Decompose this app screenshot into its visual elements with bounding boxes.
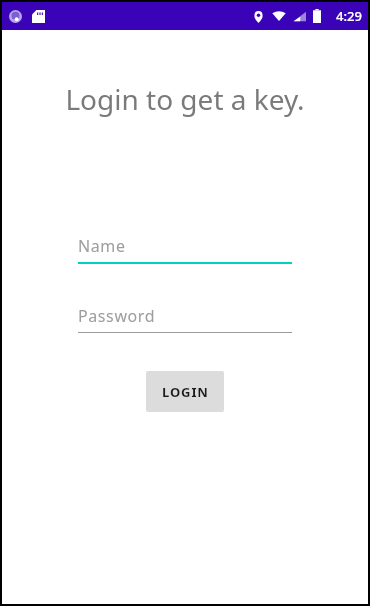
staticText: LOGIN: [162, 383, 209, 401]
staticText: Login to get a key.: [2, 80, 368, 118]
button[interactable]: LOGIN: [146, 371, 224, 412]
staticText: Name: [78, 235, 126, 257]
button[interactable]: Password: [78, 304, 292, 333]
button[interactable]: Name: [78, 234, 292, 264]
staticText: Password: [78, 305, 156, 327]
staticText: 4:29: [336, 7, 362, 25]
